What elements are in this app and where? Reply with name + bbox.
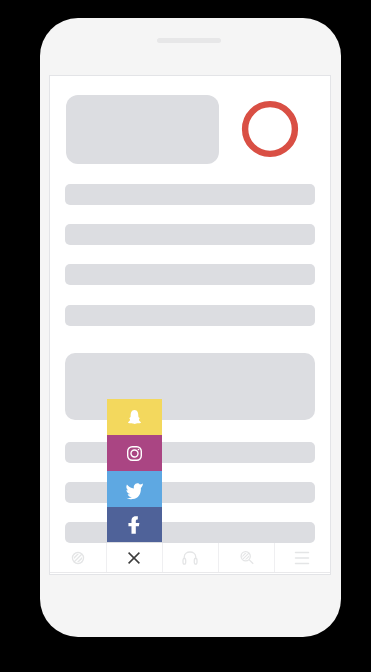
other: Close <box>126 550 142 566</box>
button[interactable]: Menu <box>274 543 330 572</box>
button[interactable] <box>65 442 315 463</box>
button[interactable]: Audio <box>162 543 218 572</box>
button[interactable]: Snapchat <box>107 399 162 435</box>
button[interactable]: Shots <box>50 543 106 572</box>
button[interactable] <box>65 482 315 503</box>
other: Audio <box>182 550 198 566</box>
button[interactable]: Close <box>106 543 162 572</box>
other: Menu <box>294 550 310 566</box>
button[interactable]: Instagram <box>107 435 162 471</box>
button[interactable] <box>66 95 219 164</box>
button[interactable]: Facebook <box>107 507 162 542</box>
button[interactable] <box>65 522 315 543</box>
button[interactable] <box>65 353 315 420</box>
other: Shots <box>70 550 86 566</box>
button[interactable]: Search <box>218 543 274 572</box>
button[interactable]: Twitter <box>107 471 162 507</box>
other: Search <box>238 550 254 566</box>
button[interactable]: Record <box>239 98 301 160</box>
